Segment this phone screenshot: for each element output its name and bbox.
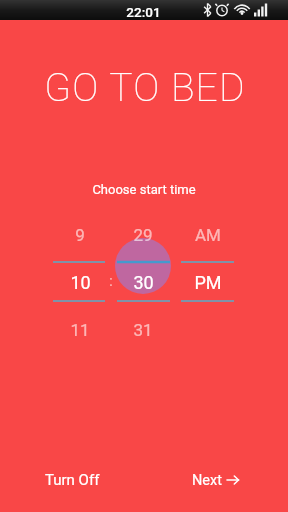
staticText: Choose start time	[92, 182, 196, 197]
staticText: 9	[75, 225, 85, 245]
staticText: PM	[194, 272, 222, 293]
staticText: AM	[195, 225, 221, 245]
staticText: :	[109, 273, 113, 289]
staticText: 29	[133, 225, 153, 245]
staticText: GO TO BED	[44, 65, 246, 111]
button[interactable]: 30	[113, 269, 173, 295]
staticText: 31	[133, 320, 153, 340]
button[interactable]: 9	[50, 223, 110, 247]
staticText: 10	[70, 272, 91, 293]
staticText: 11	[70, 320, 90, 340]
button[interactable]: AM	[178, 223, 238, 247]
staticText: Turn Off	[45, 471, 100, 489]
button[interactable]: Turn Off	[30, 462, 114, 498]
button[interactable]: 10	[50, 269, 110, 295]
button[interactable]: 29	[113, 223, 173, 247]
button[interactable]: Next	[182, 462, 258, 498]
button[interactable]: 31	[113, 318, 173, 342]
staticText: 30	[133, 272, 154, 293]
button[interactable]: 11	[50, 318, 110, 342]
staticText: 22:01	[126, 4, 161, 20]
button[interactable]: PM	[178, 269, 238, 295]
staticText: Next	[192, 472, 222, 489]
